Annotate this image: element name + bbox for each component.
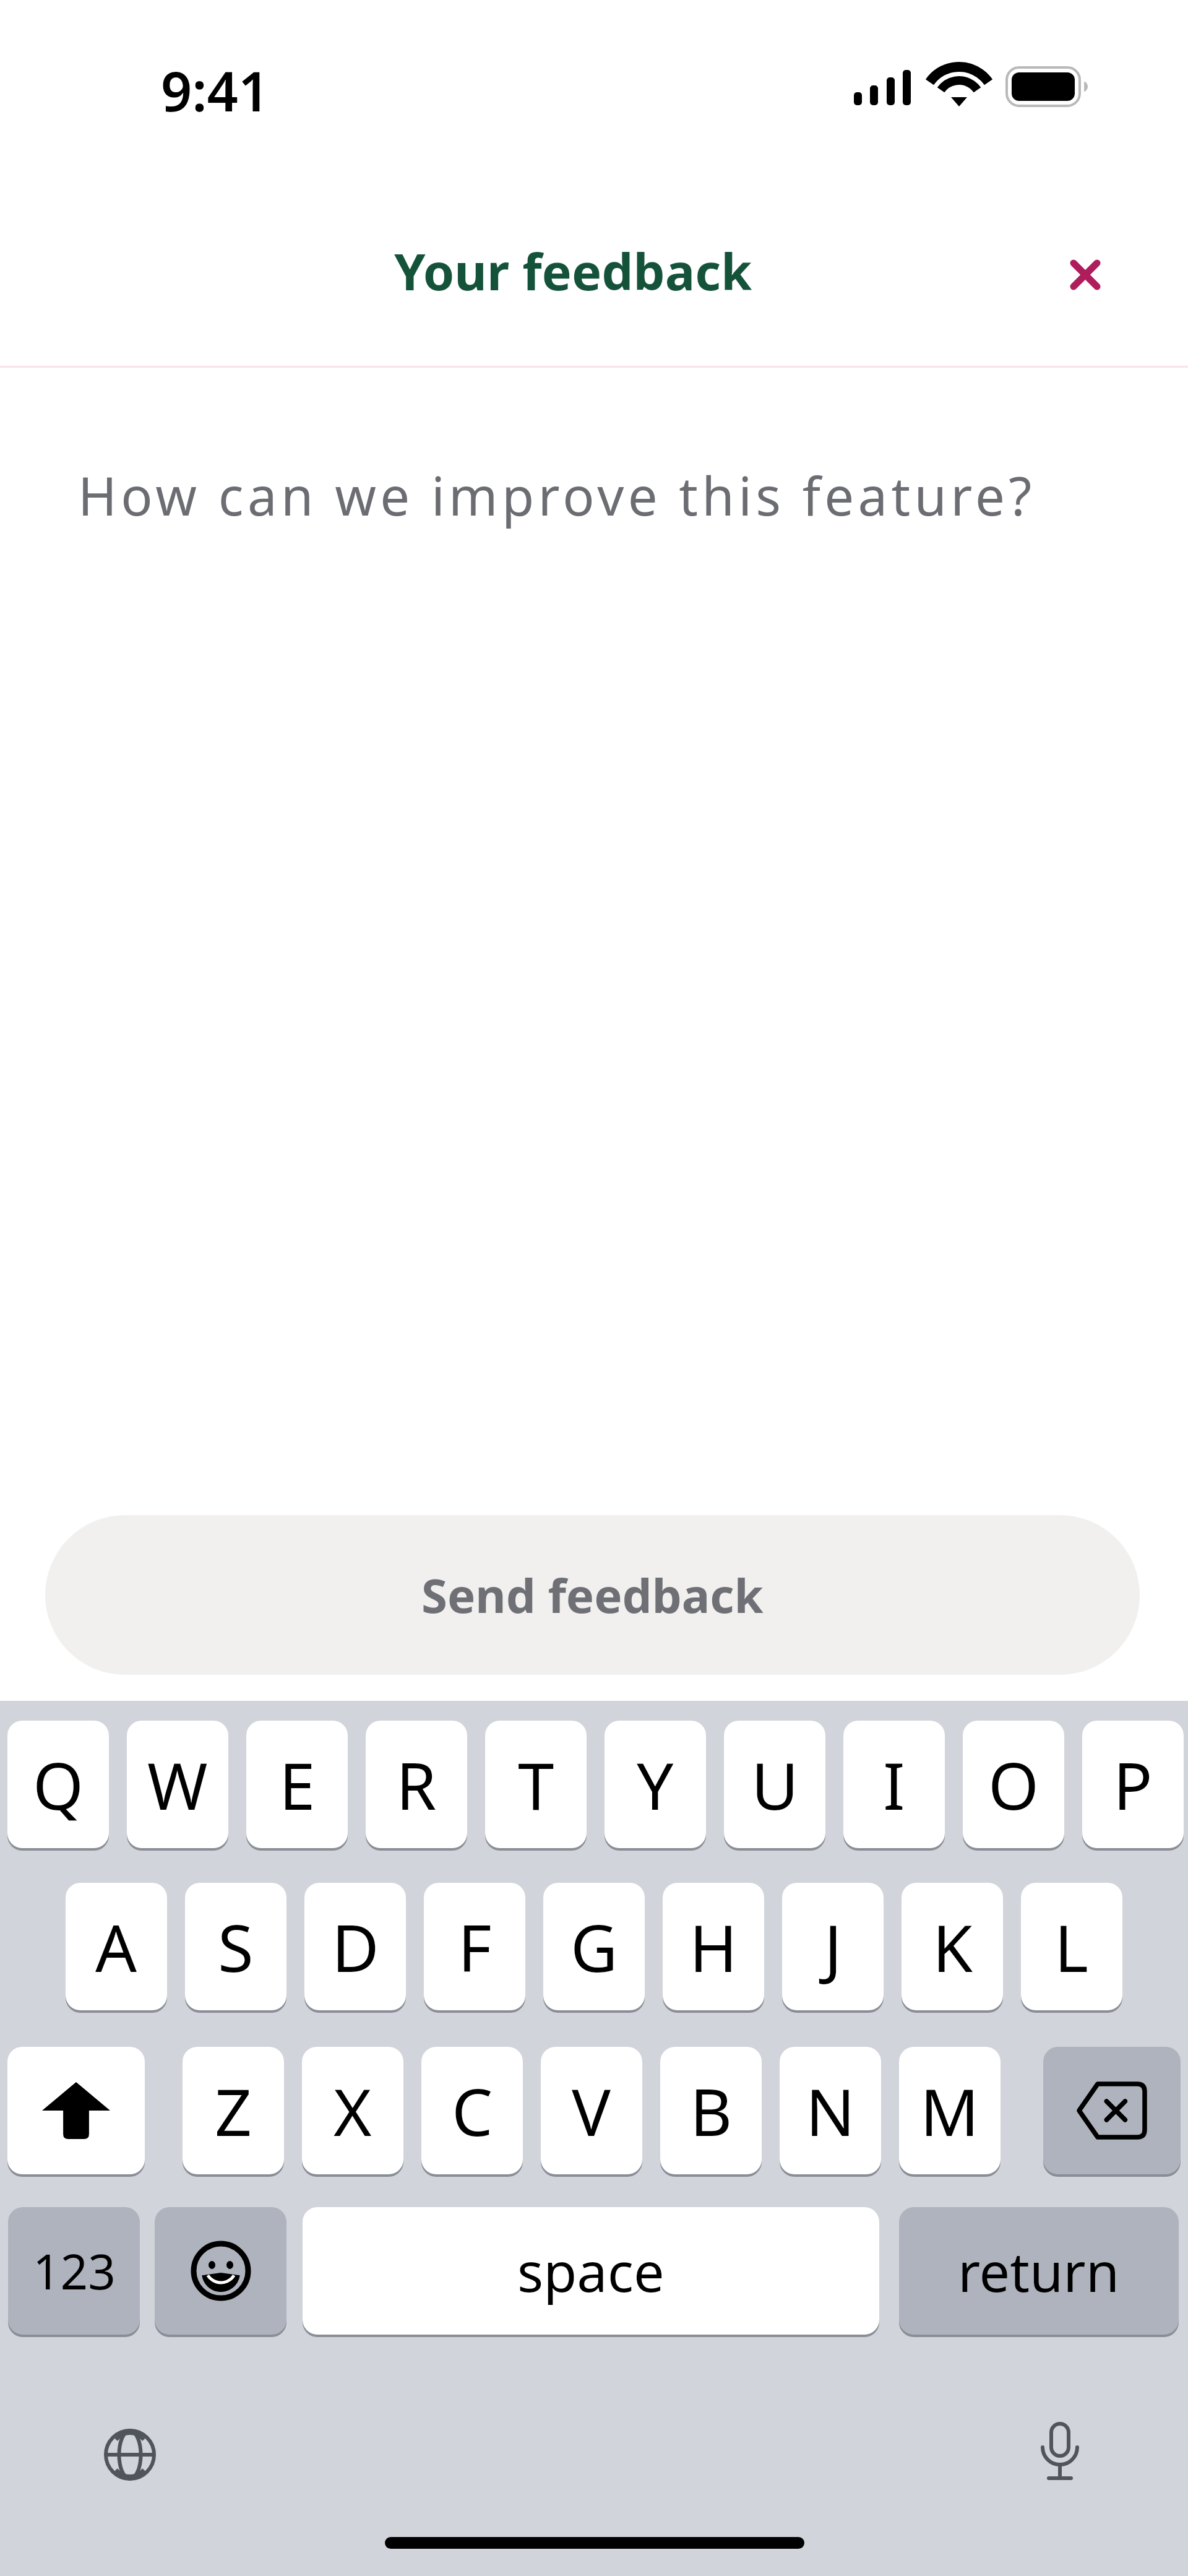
staticText: X	[334, 2067, 372, 2155]
button[interactable]	[1017, 2413, 1103, 2499]
button[interactable]: F	[424, 1883, 525, 2010]
button[interactable]: 123	[8, 2207, 140, 2335]
button[interactable]: U	[724, 1721, 825, 1848]
staticText: F	[458, 1903, 492, 1991]
staticText: B	[690, 2067, 733, 2155]
staticText: J	[824, 1903, 842, 1991]
button[interactable]	[1043, 2047, 1181, 2174]
staticText: S	[218, 1903, 254, 1991]
button[interactable]	[155, 2207, 286, 2335]
button[interactable]: space	[303, 2207, 879, 2335]
button[interactable]: X	[302, 2047, 403, 2174]
button[interactable]: N	[780, 2047, 881, 2174]
staticText: Send feedback	[421, 1563, 764, 1627]
staticText: space	[517, 2234, 665, 2308]
staticText: G	[570, 1903, 618, 1991]
button[interactable]: G	[543, 1883, 645, 2010]
button[interactable]: W	[127, 1721, 228, 1848]
button[interactable]: I	[843, 1721, 945, 1848]
button[interactable]	[87, 2411, 173, 2498]
button[interactable]: O	[963, 1721, 1064, 1848]
button[interactable]: V	[541, 2047, 642, 2174]
staticText: Q	[33, 1740, 84, 1829]
staticText: Your feedback	[394, 236, 752, 305]
button[interactable]: R	[366, 1721, 467, 1848]
button[interactable]: Q	[7, 1721, 109, 1848]
staticText: P	[1113, 1740, 1153, 1829]
button[interactable]	[1046, 235, 1125, 314]
staticText: R	[396, 1740, 437, 1829]
staticText: U	[751, 1740, 799, 1829]
staticText: E	[279, 1740, 316, 1829]
staticText: 9:41	[161, 53, 270, 128]
staticText: L	[1054, 1903, 1089, 1991]
staticText: T	[518, 1740, 554, 1829]
staticText: V	[572, 2067, 611, 2155]
button[interactable]: D	[304, 1883, 406, 2010]
staticText: Y	[637, 1740, 674, 1829]
button[interactable]: L	[1021, 1883, 1122, 2010]
staticText: W	[147, 1740, 208, 1829]
staticText: H	[689, 1903, 738, 1991]
staticText: M	[920, 2067, 979, 2155]
button[interactable]	[7, 2047, 145, 2174]
button[interactable]: A	[66, 1883, 167, 2010]
button[interactable]: H	[663, 1883, 764, 2010]
staticText: I	[883, 1740, 905, 1829]
staticText: return	[958, 2234, 1120, 2308]
staticText: A	[95, 1903, 137, 1991]
staticText: N	[806, 2067, 855, 2155]
button[interactable]: M	[899, 2047, 1001, 2174]
button[interactable]: C	[421, 2047, 523, 2174]
staticText: K	[932, 1903, 973, 1991]
button[interactable]: P	[1082, 1721, 1184, 1848]
button[interactable]: B	[660, 2047, 762, 2174]
button[interactable]: T	[485, 1721, 587, 1848]
staticText: O	[988, 1740, 1039, 1829]
button[interactable]: return	[899, 2207, 1179, 2335]
button[interactable]: J	[782, 1883, 884, 2010]
button[interactable]: Y	[605, 1721, 706, 1848]
button[interactable]: Send feedback	[45, 1515, 1140, 1675]
staticText: Z	[215, 2067, 252, 2155]
staticText: D	[332, 1903, 379, 1991]
button[interactable]: K	[902, 1883, 1003, 2010]
staticText: 123	[33, 2238, 116, 2304]
button[interactable]: Z	[183, 2047, 284, 2174]
button[interactable]: E	[246, 1721, 348, 1848]
staticText: How can we improve this feature?	[78, 459, 1036, 531]
staticText: C	[452, 2067, 493, 2155]
button[interactable]: S	[185, 1883, 286, 2010]
